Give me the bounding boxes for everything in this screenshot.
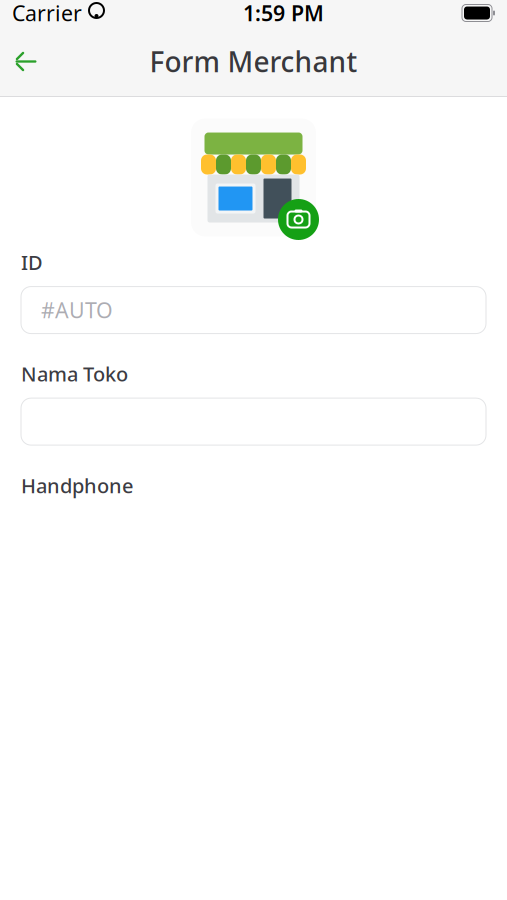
staticText: #AUTO	[41, 296, 113, 324]
button[interactable]: Back	[0, 36, 52, 86]
button[interactable]: #AUTO	[21, 287, 486, 334]
staticText: Carrier	[12, 0, 82, 27]
button[interactable]	[21, 398, 486, 445]
staticText: ID	[21, 249, 43, 276]
staticText: Handphone	[21, 472, 133, 499]
staticText: Nama Toko	[21, 361, 128, 387]
staticText: Form Merchant	[149, 43, 357, 80]
staticText: 1:59 PM	[243, 0, 324, 27]
button[interactable]: Change photo	[278, 199, 319, 240]
